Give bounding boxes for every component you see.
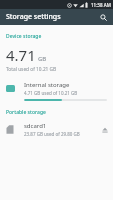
staticText: Portable storage — [6, 109, 113, 116]
staticText: Storage settings — [6, 12, 61, 22]
button[interactable]: sdcard1 — [0, 119, 113, 140]
staticText: 4.71 GB used of 10.21 GB — [24, 90, 78, 96]
staticText: Device storage — [6, 33, 113, 40]
staticText: 23.87 GB used of 29.80 GB — [24, 131, 80, 137]
staticText: Internal storage — [24, 81, 70, 89]
staticText: GB — [38, 55, 47, 63]
staticText: 11:38 AM — [91, 2, 111, 8]
button[interactable]: Eject sdcard1 — [98, 123, 111, 136]
button[interactable]: Search — [97, 11, 109, 23]
staticText: sdcard1 — [24, 122, 47, 130]
staticText: 4.71 — [6, 45, 36, 65]
button[interactable]: Internal storage — [0, 78, 113, 104]
staticText: Total used of 10.21 GB — [6, 66, 57, 73]
